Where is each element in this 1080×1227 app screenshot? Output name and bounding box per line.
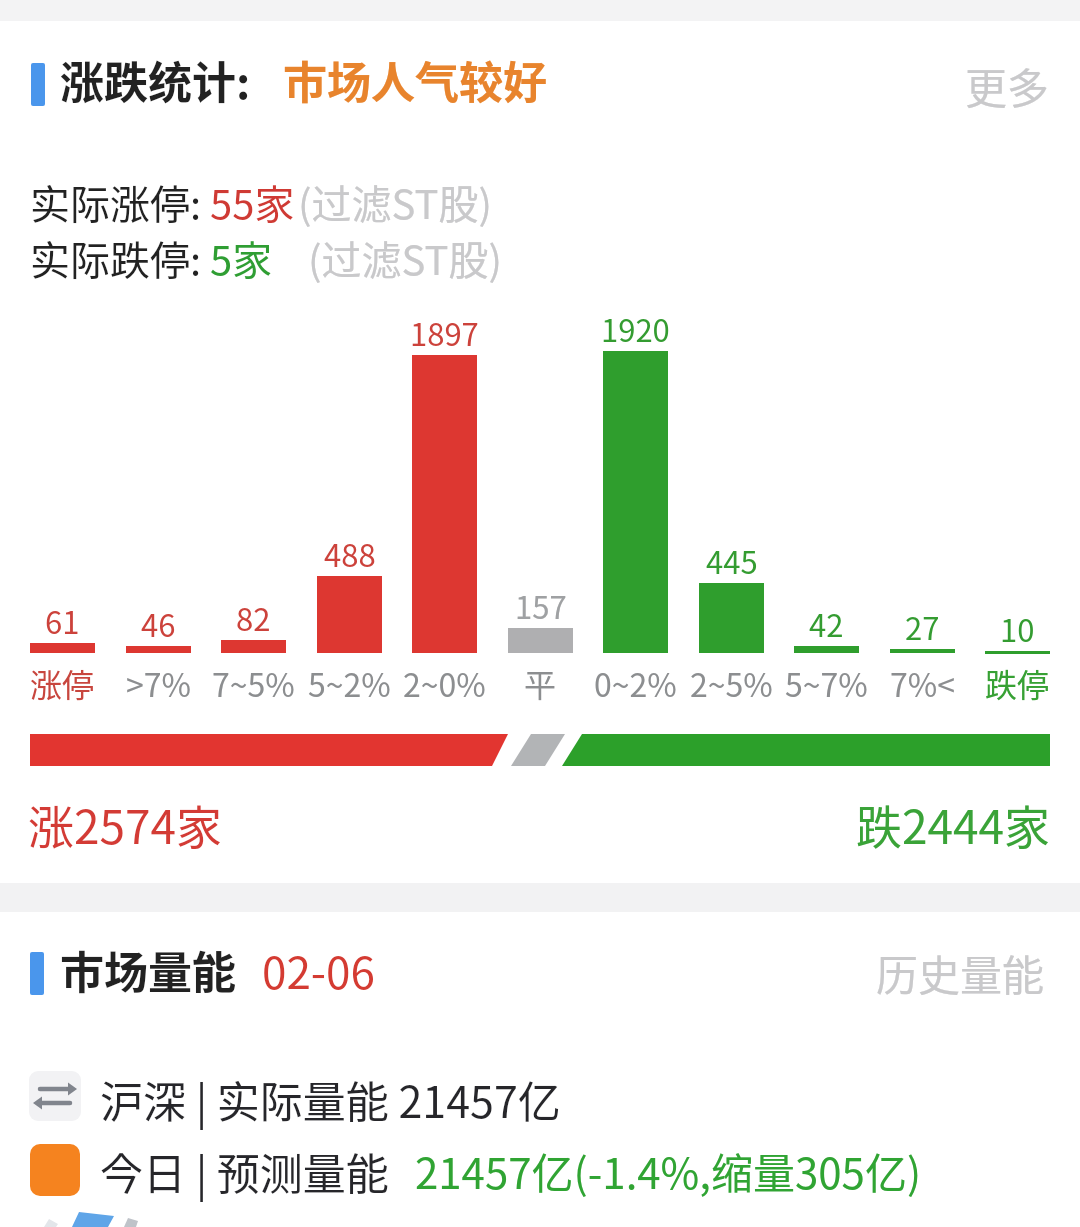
staticText: 21457亿(-1.4%,缩量305亿) xyxy=(415,1140,922,1201)
staticText: 2~5% xyxy=(690,660,773,706)
staticText: 02-06 xyxy=(262,938,375,1002)
staticText: 7%< xyxy=(890,660,955,706)
staticText: 市场人气较好 xyxy=(283,48,547,112)
staticText: 沪深 | 实际量能 21457亿 xyxy=(100,1068,561,1130)
staticText: 157 xyxy=(515,583,567,628)
staticText: 实际跌停: xyxy=(30,229,202,287)
button[interactable]: 更多 xyxy=(952,54,1062,116)
staticText: 历史量能 xyxy=(876,942,1045,1003)
staticText: 1897 xyxy=(410,310,479,355)
staticText: 更多 xyxy=(965,55,1050,116)
button[interactable]: 历史量能 xyxy=(860,941,1060,1003)
staticText: 今日 | 预测量能 xyxy=(100,1140,389,1202)
button[interactable] xyxy=(0,1062,1080,1130)
staticText: 2~0% xyxy=(403,660,486,706)
staticText: 平 xyxy=(524,660,557,706)
staticText: 5~7% xyxy=(785,660,868,706)
staticText: 0~2% xyxy=(594,660,677,706)
staticText: 涨跌统计: xyxy=(60,48,251,112)
staticText: (过滤ST股) xyxy=(298,173,492,231)
staticText: 82 xyxy=(236,595,271,640)
staticText: 27 xyxy=(905,604,940,649)
staticText: 跌2444家 xyxy=(856,791,1051,858)
staticText: 42 xyxy=(809,601,844,646)
staticText: 488 xyxy=(324,531,376,576)
staticText: (过滤ST股) xyxy=(308,229,502,287)
button[interactable] xyxy=(0,1136,1080,1204)
staticText: 涨2574家 xyxy=(28,791,223,858)
staticText: 涨停 xyxy=(30,660,95,706)
staticText: 7~5% xyxy=(212,660,295,706)
staticText: 55家 xyxy=(210,173,295,231)
staticText: 445 xyxy=(706,538,758,583)
staticText: >7% xyxy=(126,660,191,706)
staticText: 1920 xyxy=(601,306,670,351)
staticText: 46 xyxy=(141,601,176,646)
staticText: 跌停 xyxy=(985,660,1050,706)
staticText: 61 xyxy=(45,598,80,643)
staticText: 10 xyxy=(1000,606,1035,651)
staticText: 5~2% xyxy=(308,660,391,706)
staticText: 市场量能 xyxy=(60,938,236,1002)
staticText: 实际涨停: xyxy=(30,173,202,231)
staticText: 5家 xyxy=(210,229,273,287)
